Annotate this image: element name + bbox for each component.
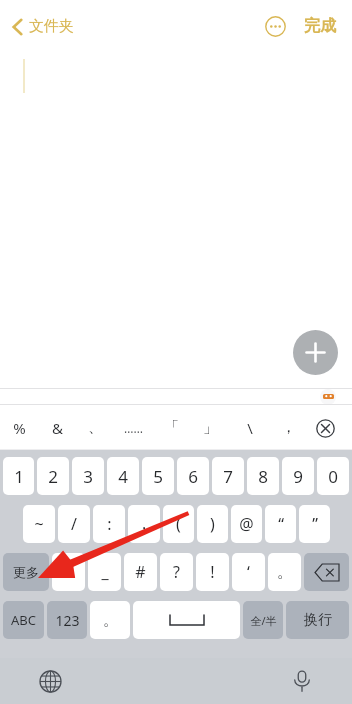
button[interactable]: _ (88, 553, 121, 591)
staticText: 3 (83, 465, 93, 488)
button[interactable]: 全/半 (243, 601, 283, 639)
staticText: 1 (14, 465, 24, 488)
staticText: # (135, 561, 146, 583)
button[interactable]: ? (160, 553, 193, 591)
button[interactable]: More options (260, 11, 290, 41)
button[interactable]: Change language (30, 661, 70, 701)
staticText: 6 (188, 465, 198, 488)
staticText: 更多 (13, 564, 39, 580)
button[interactable]: 5 (142, 457, 174, 495)
staticText: ) (210, 513, 215, 535)
button[interactable]: 123 (47, 601, 87, 639)
button[interactable]: : (93, 505, 125, 543)
button[interactable]: / (58, 505, 90, 543)
button[interactable]: - (52, 553, 85, 591)
button[interactable]: 。 (268, 553, 301, 591)
staticText: % (13, 418, 26, 438)
button[interactable]: @ (231, 505, 262, 543)
button[interactable]: 6 (177, 457, 209, 495)
staticText: ‘ (247, 561, 250, 583)
staticText: 4 (118, 465, 128, 488)
button[interactable]: ! (196, 553, 229, 591)
button[interactable]: 文件夹 (8, 11, 78, 42)
staticText: 、 (88, 418, 103, 437)
button[interactable]: “ (265, 505, 296, 543)
staticText: / (71, 513, 77, 535)
staticText: 5 (153, 465, 163, 488)
staticText: ( (176, 513, 181, 535)
button[interactable]: 「 (152, 405, 191, 450)
staticText: ， (136, 514, 152, 534)
staticText: 123 (55, 611, 80, 630)
staticText: 「 (164, 418, 179, 437)
button[interactable]: ) (197, 505, 228, 543)
button[interactable]: 。 (90, 601, 130, 639)
button[interactable]: 换行 (286, 601, 349, 639)
staticText: …… (124, 420, 143, 436)
button[interactable]: ~ (23, 505, 55, 543)
staticText: ! (210, 561, 215, 583)
button[interactable]: ” (299, 505, 330, 543)
staticText: 」 (203, 418, 218, 437)
staticText: ~ (34, 513, 44, 535)
button[interactable]: 9 (282, 457, 314, 495)
button[interactable]: 3 (72, 457, 104, 495)
button[interactable]: ， (269, 405, 308, 450)
button[interactable]: & (38, 405, 76, 450)
staticText: 7 (223, 465, 233, 488)
staticText: 。 (103, 611, 118, 630)
staticText: 0 (328, 465, 338, 488)
staticText: ” (312, 513, 318, 535)
button[interactable]: …… (114, 405, 152, 450)
button[interactable]: % (0, 405, 38, 450)
button[interactable]: 完成 (300, 10, 340, 42)
button[interactable]: Space (133, 601, 240, 639)
staticText: ? (173, 561, 180, 583)
button[interactable]: 」 (191, 405, 230, 450)
staticText: \ (247, 418, 253, 438)
button[interactable]: 更多 (3, 553, 49, 591)
staticText: 完成 (304, 16, 336, 36)
button[interactable]: ， (128, 505, 160, 543)
button[interactable]: Add (293, 330, 338, 375)
button[interactable]: Backspace (304, 553, 349, 591)
button[interactable]: Sticker (320, 389, 336, 405)
button[interactable]: 2 (37, 457, 69, 495)
button[interactable]: 、 (76, 405, 114, 450)
staticText: ， (281, 418, 296, 437)
button[interactable]: # (124, 553, 157, 591)
staticText: 换行 (304, 611, 332, 629)
button[interactable]: Close symbols (310, 413, 340, 443)
button[interactable]: 4 (107, 457, 139, 495)
button[interactable]: \ (230, 405, 269, 450)
staticText: 2 (48, 465, 58, 488)
staticText: 文件夹 (29, 17, 74, 36)
staticText: & (52, 418, 63, 438)
staticText: ABC (11, 611, 36, 629)
staticText: 8 (258, 465, 268, 488)
staticText: 9 (293, 465, 303, 488)
button[interactable]: ABC (3, 601, 44, 639)
staticText: “ (278, 513, 284, 535)
button[interactable]: 8 (247, 457, 279, 495)
button[interactable]: ‘ (232, 553, 265, 591)
button[interactable]: Voice input (282, 661, 322, 701)
staticText: 全/半 (250, 613, 277, 628)
staticText: : (107, 513, 112, 535)
staticText: _ (101, 561, 109, 583)
staticText: - (66, 561, 72, 583)
button[interactable]: ( (163, 505, 194, 543)
staticText: @ (239, 513, 254, 535)
button[interactable]: 0 (317, 457, 349, 495)
staticText: 。 (277, 562, 293, 582)
button[interactable]: 1 (3, 457, 34, 495)
button[interactable]: 7 (212, 457, 244, 495)
